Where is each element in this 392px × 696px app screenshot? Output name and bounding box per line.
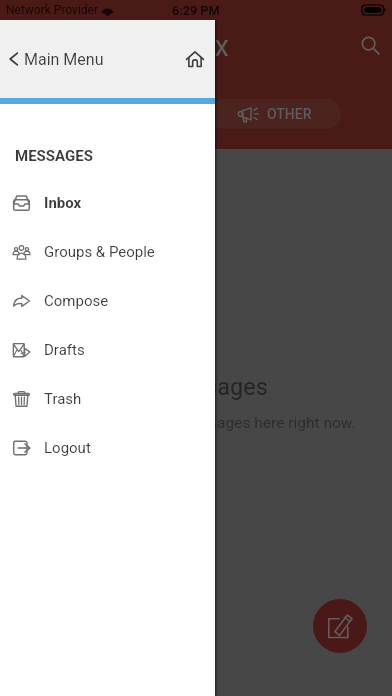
button[interactable]: Compose message	[313, 599, 367, 653]
staticText: No Messages	[124, 373, 268, 401]
staticText: 6:29 PM	[172, 3, 220, 18]
staticText: Main Menu	[24, 50, 104, 69]
button[interactable]: Groups & People	[0, 227, 215, 276]
staticText: MESSAGES	[15, 147, 93, 165]
staticText: Inbox	[44, 194, 82, 212]
staticText: Network Provider	[6, 3, 99, 17]
staticText: You do not have any messages here right …	[37, 414, 356, 432]
button[interactable]: Compose	[0, 276, 215, 325]
button[interactable]: Search	[354, 29, 386, 61]
staticText: INBOX	[164, 36, 229, 62]
staticText: Logout	[44, 439, 91, 457]
button[interactable]: Drafts	[0, 325, 215, 374]
button[interactable]: Logout	[0, 423, 215, 472]
staticText: OTHER	[267, 106, 312, 122]
button[interactable]: Home	[182, 46, 208, 72]
staticText: Drafts	[44, 341, 85, 359]
staticText: Groups & People	[44, 243, 155, 261]
button[interactable]: OTHER	[209, 99, 341, 129]
button[interactable]: Inbox	[0, 178, 215, 227]
button[interactable]: Main Menu	[8, 35, 104, 83]
button[interactable]: Trash	[0, 374, 215, 423]
staticText: Trash	[44, 390, 82, 408]
staticText: Compose	[44, 292, 109, 310]
